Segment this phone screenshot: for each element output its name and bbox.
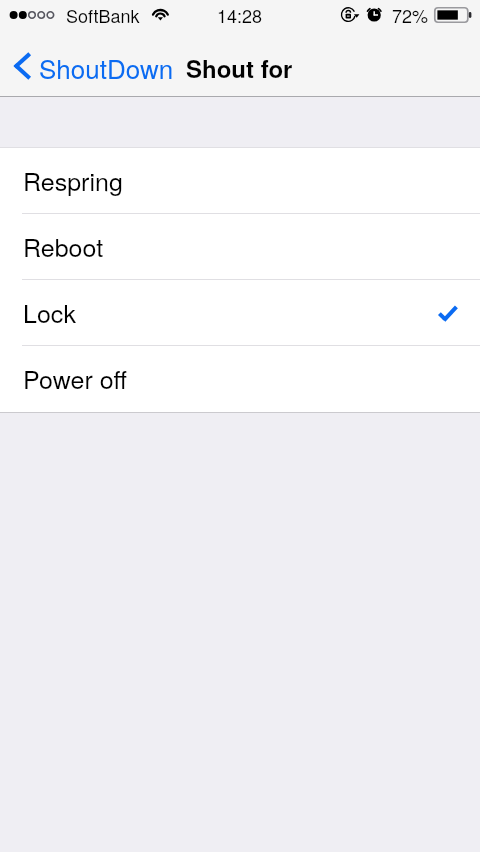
button[interactable]: Power off bbox=[0, 346, 480, 412]
staticText: Reboot bbox=[23, 228, 104, 264]
button[interactable]: Back bbox=[4, 40, 182, 95]
staticText: ShoutDown bbox=[39, 49, 174, 86]
button[interactable]: Respring bbox=[0, 148, 480, 214]
staticText: Respring bbox=[23, 162, 123, 198]
staticText: Shout for bbox=[186, 51, 293, 85]
button[interactable]: Reboot bbox=[0, 214, 480, 280]
other: Back bbox=[14, 51, 32, 81]
staticText: 14:28 bbox=[217, 2, 263, 28]
staticText: Power off bbox=[23, 360, 127, 396]
staticText: SoftBank bbox=[66, 2, 140, 28]
button[interactable]: Lock bbox=[0, 280, 480, 346]
staticText: Lock bbox=[23, 294, 76, 330]
staticText: 72% bbox=[392, 2, 429, 28]
